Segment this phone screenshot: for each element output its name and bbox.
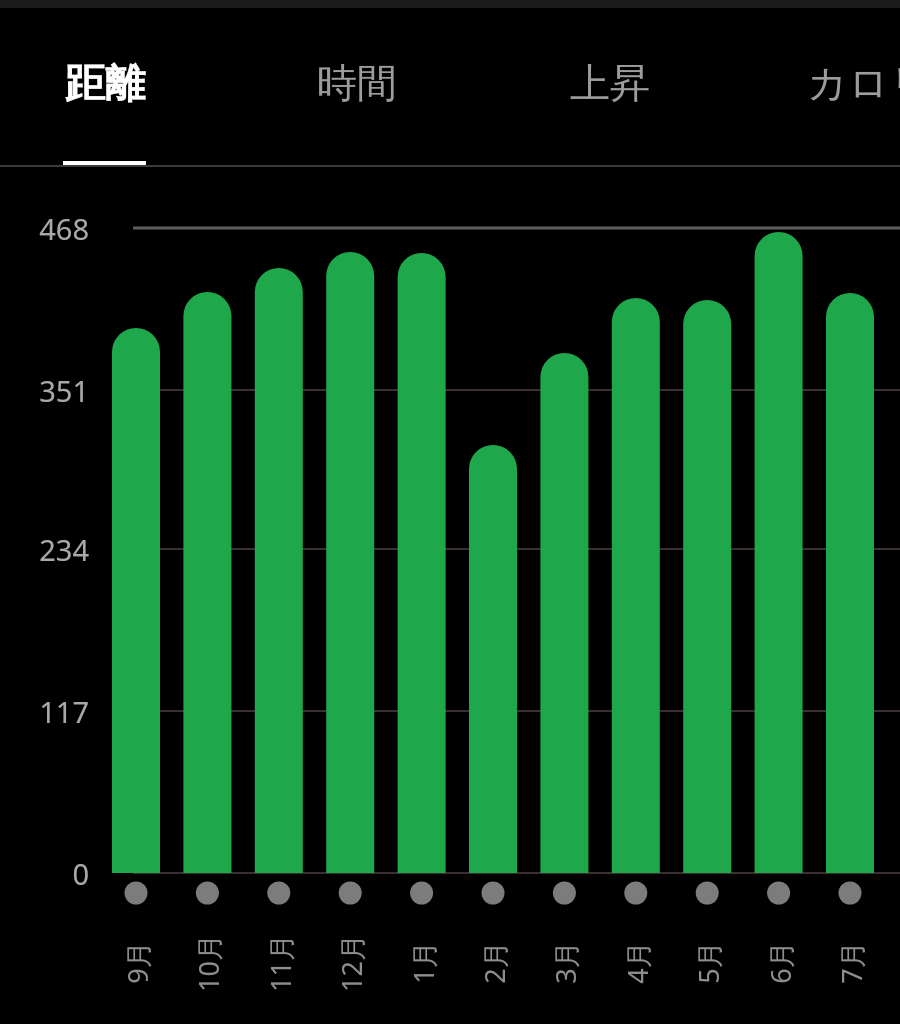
staticText: 117 bbox=[39, 692, 89, 731]
staticText: 351 bbox=[39, 371, 89, 410]
button[interactable]: 4月 bbox=[619, 913, 653, 1013]
button[interactable]: 12月 bbox=[333, 913, 367, 1013]
staticText: 12月 bbox=[333, 934, 367, 992]
staticText: 7月 bbox=[833, 941, 867, 984]
staticText: 9月 bbox=[119, 941, 153, 984]
button[interactable]: 上昇 bbox=[510, 14, 710, 154]
button[interactable]: 2月 bbox=[476, 913, 510, 1013]
button[interactable]: 5月 bbox=[690, 913, 724, 1013]
staticText: 3月 bbox=[547, 941, 581, 984]
staticText: 11月 bbox=[262, 934, 296, 992]
button[interactable]: 9月 bbox=[119, 913, 153, 1013]
button[interactable]: カロリー bbox=[788, 14, 900, 154]
button[interactable]: 時間 bbox=[257, 14, 457, 154]
staticText: 234 bbox=[39, 530, 89, 569]
staticText: 10月 bbox=[190, 934, 224, 992]
staticText: 上昇 bbox=[570, 58, 650, 108]
staticText: 1月 bbox=[405, 941, 439, 984]
button[interactable]: 距離 bbox=[5, 14, 205, 154]
staticText: カロリー bbox=[807, 58, 900, 108]
button[interactable]: 7月 bbox=[833, 913, 867, 1013]
button[interactable]: 1月 bbox=[405, 913, 439, 1013]
staticText: 468 bbox=[39, 209, 89, 248]
button[interactable]: 6月 bbox=[762, 913, 796, 1013]
staticText: 0 bbox=[72, 854, 89, 893]
staticText: 6月 bbox=[762, 941, 796, 984]
button[interactable]: 11月 bbox=[262, 913, 296, 1013]
staticText: 距離 bbox=[65, 58, 145, 108]
staticText: 2月 bbox=[476, 941, 510, 984]
staticText: 4月 bbox=[619, 941, 653, 984]
button[interactable]: 10月 bbox=[190, 913, 224, 1013]
staticText: 時間 bbox=[317, 58, 397, 108]
staticText: 5月 bbox=[690, 941, 724, 984]
button[interactable]: 3月 bbox=[547, 913, 581, 1013]
